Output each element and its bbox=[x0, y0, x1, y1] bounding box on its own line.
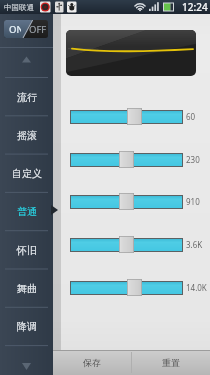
button[interactable]: 怀旧 bbox=[0, 231, 53, 269]
button[interactable]: 保存 bbox=[53, 350, 131, 375]
staticText: 重置 bbox=[162, 357, 180, 368]
staticText: ON bbox=[9, 23, 21, 36]
staticText: 12:24 bbox=[182, 0, 208, 14]
staticText: 60 bbox=[186, 111, 196, 122]
button[interactable]: Equalizer on off switch bbox=[4, 20, 48, 38]
button[interactable]: Band 230 bbox=[70, 153, 183, 167]
staticText: 230 bbox=[186, 154, 200, 165]
staticText: 910 bbox=[186, 196, 200, 207]
button[interactable]: 降调 bbox=[0, 307, 53, 345]
button[interactable]: Slider handle 910 bbox=[119, 193, 134, 210]
staticText: 保存 bbox=[83, 357, 101, 368]
staticText: 摇滚 bbox=[17, 129, 37, 142]
button[interactable]: 普通 bbox=[0, 192, 53, 230]
button[interactable]: Slider handle 230 bbox=[119, 151, 134, 168]
button[interactable]: Slider handle 3.6K bbox=[119, 236, 134, 253]
staticText: 舞曲 bbox=[17, 282, 37, 295]
staticText: 14.0K bbox=[186, 282, 207, 293]
button[interactable]: 流行 bbox=[0, 78, 53, 116]
button[interactable]: Slider handle 60 bbox=[127, 108, 142, 125]
button[interactable]: 舞曲 bbox=[0, 269, 53, 307]
button[interactable]: Equalizer response curve bbox=[66, 30, 196, 76]
staticText: 流行 bbox=[17, 91, 37, 104]
button[interactable]: 重置 bbox=[131, 350, 210, 375]
staticText: 降调 bbox=[17, 320, 37, 333]
button[interactable]: 摇滚 bbox=[0, 116, 53, 154]
button[interactable]: Slider handle 14.0K bbox=[127, 279, 142, 296]
staticText: OFF bbox=[29, 23, 46, 36]
staticText: 怀旧 bbox=[17, 244, 37, 257]
staticText: 自定义 bbox=[12, 167, 42, 180]
staticText: 3.6K bbox=[186, 239, 203, 250]
button[interactable]: Band 14.0K bbox=[70, 281, 183, 295]
button[interactable]: Band 3.6K bbox=[70, 238, 183, 252]
button[interactable]: Band 910 bbox=[70, 195, 183, 209]
button[interactable]: Band 60 bbox=[70, 110, 183, 124]
button[interactable]: 自定义 bbox=[0, 154, 53, 192]
staticText: 普通 bbox=[17, 205, 37, 218]
staticText: 中国联通 bbox=[4, 3, 34, 12]
